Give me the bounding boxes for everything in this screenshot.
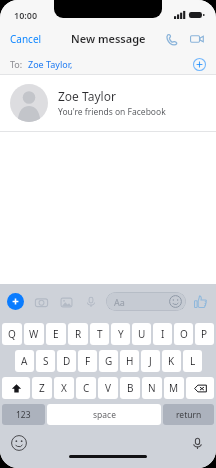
- staticText: New message: [71, 31, 146, 46]
- button[interactable]: O: [174, 323, 193, 345]
- staticText: You're friends on Facebook: [58, 106, 166, 118]
- button[interactable]: I: [153, 323, 172, 345]
- button[interactable]: U: [132, 323, 151, 345]
- button[interactable]: 123: [2, 404, 45, 425]
- staticText: 10:00: [14, 9, 38, 21]
- staticText: H: [126, 354, 134, 368]
- staticText: return: [176, 409, 202, 421]
- staticText: U: [138, 327, 146, 341]
- button[interactable]: X: [54, 377, 74, 399]
- button[interactable]: C: [76, 377, 96, 399]
- button[interactable]: B: [120, 377, 140, 399]
- staticText: A: [21, 354, 28, 368]
- staticText: W: [29, 327, 39, 341]
- button[interactable]: S: [36, 350, 55, 372]
- button[interactable]: J: [141, 350, 160, 372]
- button[interactable]: Camera: [32, 293, 50, 311]
- staticText: T: [97, 327, 103, 341]
- button[interactable]: G: [99, 350, 118, 372]
- button[interactable]: Emoji: [11, 435, 27, 451]
- button[interactable]: Q: [2, 323, 22, 345]
- button[interactable]: W: [24, 323, 44, 345]
- button[interactable]: Voice message: [82, 293, 100, 311]
- button[interactable]: Y: [111, 323, 130, 345]
- button[interactable]: Zoe Taylor: [0, 75, 216, 131]
- staticText: To:: [10, 58, 23, 70]
- button[interactable]: Aa: [106, 292, 186, 311]
- button[interactable]: Gallery: [57, 293, 75, 311]
- button[interactable]: T: [90, 323, 109, 345]
- staticText: N: [148, 381, 156, 395]
- staticText: X: [61, 381, 67, 395]
- staticText: space: [93, 409, 116, 421]
- button[interactable]: L: [183, 350, 202, 372]
- button[interactable]: space: [47, 404, 161, 425]
- button[interactable]: F: [78, 350, 97, 372]
- button[interactable]: R: [68, 323, 88, 345]
- button[interactable]: H: [120, 350, 139, 372]
- staticText: Zoe Taylor,: [28, 58, 73, 70]
- staticText: C: [83, 381, 90, 395]
- button[interactable]: D: [57, 350, 76, 372]
- staticText: R: [75, 327, 82, 341]
- staticText: Aa: [114, 296, 125, 308]
- staticText: G: [105, 354, 113, 368]
- button[interactable]: P: [195, 323, 214, 345]
- button[interactable]: [186, 377, 214, 399]
- button[interactable]: return: [163, 404, 214, 425]
- staticText: B: [127, 381, 134, 395]
- staticText: O: [180, 327, 188, 341]
- button[interactable]: [2, 377, 30, 399]
- staticText: I: [161, 327, 165, 341]
- button[interactable]: Video call: [186, 28, 208, 50]
- button[interactable]: E: [46, 323, 66, 345]
- staticText: J: [149, 354, 152, 368]
- button[interactable]: More actions: [7, 293, 24, 310]
- staticText: F: [85, 354, 91, 368]
- staticText: Y: [118, 327, 124, 341]
- button[interactable]: Cancel: [0, 28, 50, 50]
- button[interactable]: N: [142, 377, 162, 399]
- button[interactable]: V: [98, 377, 118, 399]
- staticText: Z: [39, 381, 45, 395]
- staticText: L: [190, 354, 196, 368]
- button[interactable]: Send like: [192, 293, 209, 310]
- staticText: Zoe Taylor: [58, 88, 116, 104]
- staticText: S: [43, 354, 49, 368]
- button[interactable]: Audio call: [160, 28, 182, 50]
- staticText: 123: [16, 409, 31, 421]
- staticText: P: [201, 327, 208, 341]
- staticText: Q: [8, 327, 16, 341]
- button[interactable]: A: [15, 350, 34, 372]
- button[interactable]: K: [162, 350, 181, 372]
- staticText: E: [53, 327, 59, 341]
- staticText: M: [169, 381, 179, 395]
- button[interactable]: Dictation: [189, 435, 205, 451]
- staticText: D: [63, 354, 71, 368]
- button[interactable]: Zoe Taylor,: [28, 58, 73, 70]
- staticText: V: [105, 381, 111, 395]
- staticText: Cancel: [10, 32, 42, 46]
- button[interactable]: Add contact: [191, 56, 207, 72]
- button[interactable]: Z: [32, 377, 52, 399]
- button[interactable]: M: [164, 377, 184, 399]
- staticText: K: [168, 354, 175, 368]
